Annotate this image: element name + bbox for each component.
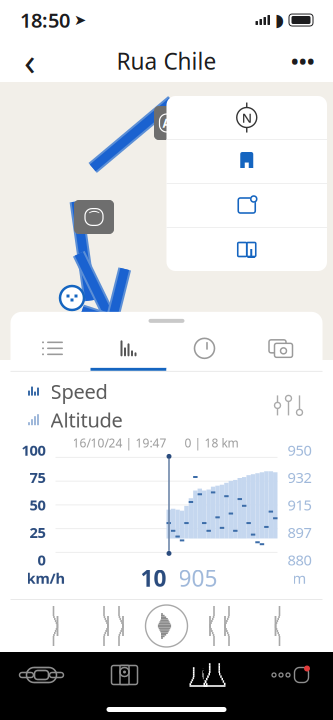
staticText: Altitude: [50, 406, 122, 433]
staticText: ◗: [275, 10, 284, 30]
staticText: 50: [29, 495, 45, 515]
button[interactable]: Download map: [225, 228, 269, 271]
button[interactable]: Tours: [166, 653, 249, 697]
staticText: 880: [287, 550, 311, 570]
staticText: Rua Chile: [116, 46, 216, 76]
button[interactable]: Notifications: [249, 653, 333, 697]
staticText: km/h: [26, 568, 65, 588]
staticText: ⌒: [88, 210, 100, 224]
button[interactable]: Details: [14, 329, 90, 371]
staticText: 950: [287, 440, 311, 460]
button[interactable]: Gauges: [166, 329, 242, 371]
staticText: •••: [291, 48, 315, 74]
button[interactable]: Go to start: [24, 603, 74, 649]
staticText: 16/10/24 | 19:47: [72, 435, 166, 451]
button[interactable]: Select area: [225, 184, 269, 227]
button[interactable]: Map: [83, 653, 166, 697]
button[interactable]: Chart settings: [268, 390, 308, 420]
staticText: 10: [140, 563, 166, 593]
button[interactable]: Charts: [90, 329, 166, 371]
staticText: 0: [37, 550, 45, 570]
button[interactable]: More options: [281, 41, 325, 81]
button[interactable]: Back: [8, 41, 52, 81]
staticText: ‹: [24, 36, 36, 86]
button[interactable]: Locate me: [225, 140, 269, 183]
staticText: 18:50: [20, 7, 70, 33]
staticText: 897: [287, 523, 311, 542]
button[interactable]: Compass: [225, 96, 269, 139]
staticText: 905: [178, 563, 217, 593]
button[interactable]: Vehicle: [0, 653, 83, 697]
staticText: 100: [21, 440, 45, 460]
button[interactable]: Go to end: [258, 603, 308, 649]
button[interactable]: Play: [140, 600, 192, 652]
staticText: ABS: [162, 115, 185, 131]
staticText: 0 | 18 km: [184, 435, 238, 451]
staticText: 25: [29, 523, 45, 542]
staticText: N: [242, 109, 252, 126]
staticText: 915: [287, 495, 311, 515]
button[interactable]: Photos: [242, 329, 318, 371]
button[interactable]: Rewind: [82, 603, 132, 649]
staticText: 75: [29, 468, 45, 487]
staticText: 932: [287, 468, 311, 487]
staticText: m: [292, 568, 306, 588]
button[interactable]: Fast forward: [200, 603, 250, 649]
staticText: ➤: [74, 12, 86, 28]
staticText: Speed: [50, 378, 107, 404]
